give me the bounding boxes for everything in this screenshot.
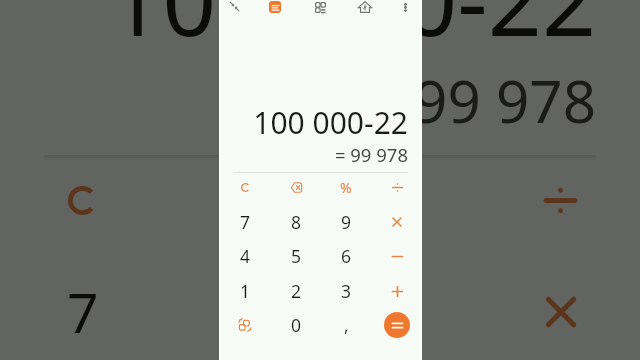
staticText: , (344, 313, 349, 337)
button[interactable]: More options (392, 0, 418, 20)
button[interactable]: Collapse (221, 0, 247, 19)
button[interactable]: Mortgage (352, 0, 378, 20)
button[interactable]: 2 (279, 274, 313, 308)
button[interactable]: Equals (384, 312, 410, 338)
staticText: 8 (291, 210, 302, 234)
button[interactable]: Convert (228, 308, 262, 342)
staticText: 3 (341, 279, 352, 303)
button[interactable]: 4 (228, 239, 262, 273)
button[interactable]: Clear (228, 170, 262, 204)
button[interactable]: 8 (279, 205, 313, 239)
staticText: % (340, 178, 352, 197)
button[interactable]: 7 (228, 205, 262, 239)
staticText: 0 (291, 313, 302, 337)
staticText: % (382, 171, 419, 231)
staticText: 9 (385, 274, 417, 349)
staticText: 8 (226, 274, 258, 349)
button[interactable]: 3 (329, 274, 363, 308)
button[interactable]: Multiply (380, 205, 414, 239)
button[interactable]: 5 (279, 239, 313, 273)
staticText: 1 (240, 279, 251, 303)
staticText: 100 000-22 (219, 102, 408, 143)
button[interactable]: 0 (279, 308, 313, 342)
staticText: 5 (291, 244, 302, 268)
staticText: 4 (240, 244, 251, 268)
staticText: 7 (240, 210, 251, 234)
button[interactable]: Plus (380, 274, 414, 308)
button[interactable]: Backspace (279, 170, 313, 204)
button[interactable]: , (329, 308, 363, 342)
button[interactable]: 9 (329, 205, 363, 239)
button[interactable]: Apps (307, 0, 333, 20)
button[interactable]: Minus (380, 239, 414, 273)
button[interactable]: 1 (228, 274, 262, 308)
staticText: 7 (67, 274, 99, 349)
staticText: = 99 978 (219, 142, 408, 167)
staticText: 6 (341, 244, 352, 268)
button[interactable]: History (269, 1, 281, 13)
button[interactable]: Percent (329, 170, 363, 204)
staticText: 100 000-22 (0, 0, 596, 64)
staticText: = 99 978 (0, 61, 596, 140)
staticText: 9 (341, 210, 352, 234)
button[interactable]: 6 (329, 239, 363, 273)
button[interactable]: Divide (380, 170, 414, 204)
staticText: 2 (291, 279, 302, 303)
